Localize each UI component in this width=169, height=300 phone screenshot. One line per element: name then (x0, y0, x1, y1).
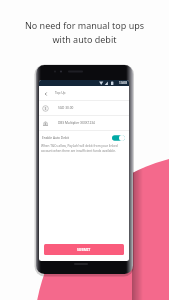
staticText: Enable Auto Debit (42, 136, 69, 140)
staticText: When T&Cs allow, PayLah! will debit from… (41, 144, 118, 153)
staticText: 13:08 (119, 81, 127, 85)
button[interactable]: DBS Multiplier XXXX1234 (42, 116, 129, 130)
button[interactable]: Enable Auto Debit (42, 131, 125, 144)
staticText: No need for manual top ups with auto deb… (0, 19, 169, 46)
staticText: Top Up (55, 91, 66, 95)
staticText: SUBMIT (77, 247, 91, 252)
staticText: SGD 30.00 (58, 106, 74, 110)
button[interactable]: SUBMIT (44, 244, 124, 255)
button[interactable]: SGD 30.00 (42, 101, 129, 115)
button[interactable]: Back (42, 90, 49, 97)
staticText: DBS Multiplier XXXX1234 (58, 121, 95, 125)
